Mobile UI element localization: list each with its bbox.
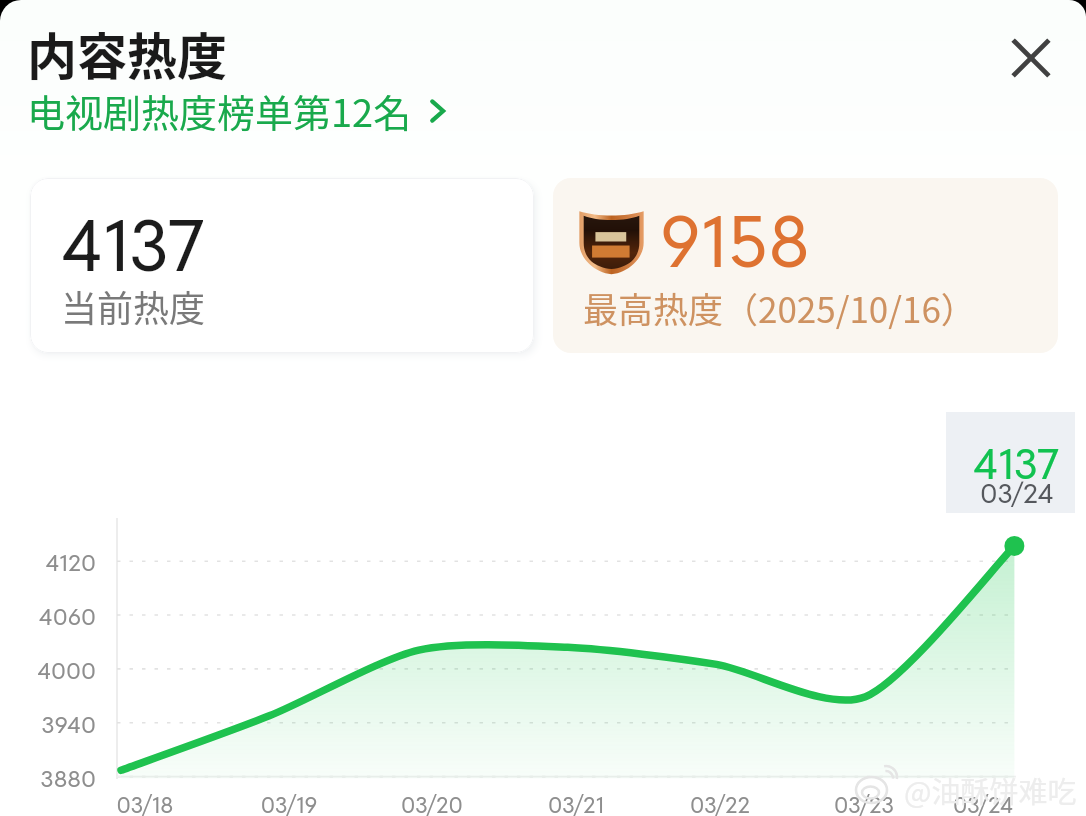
staticText: 3880 <box>26 764 96 794</box>
staticText: 03/20 <box>382 791 482 816</box>
staticText: 4120 <box>26 548 96 578</box>
staticText: 最高热度（2025/10/16） <box>583 282 976 333</box>
staticText: 当前热度 <box>61 280 206 332</box>
other: Weibo watermark <box>854 764 904 814</box>
staticText: 03/23 <box>814 791 914 816</box>
staticText: 03/24 <box>980 476 1054 511</box>
staticText: 03/24 <box>933 791 1033 816</box>
button[interactable]: 4137 <box>30 178 534 353</box>
staticText: 03/22 <box>670 791 770 816</box>
staticText: 4137 <box>973 437 1060 492</box>
button[interactable]: Close <box>1001 28 1061 88</box>
staticText: 3940 <box>26 710 96 740</box>
staticText: 内容热度 <box>27 17 227 89</box>
staticText: 4000 <box>26 656 96 686</box>
button[interactable]: 9158 <box>553 178 1058 353</box>
staticText: @油酥饼难吃 <box>904 769 1077 811</box>
staticText: 电视剧热度榜单第12名 <box>27 83 412 138</box>
staticText: 9158 <box>660 196 810 287</box>
staticText: 4137 <box>61 200 205 291</box>
staticText: 03/19 <box>239 791 339 816</box>
staticText: 03/21 <box>526 791 626 816</box>
button[interactable]: 电视剧热度榜单第12名 <box>27 83 454 138</box>
staticText: 03/18 <box>95 791 195 816</box>
staticText: 4060 <box>26 602 96 632</box>
